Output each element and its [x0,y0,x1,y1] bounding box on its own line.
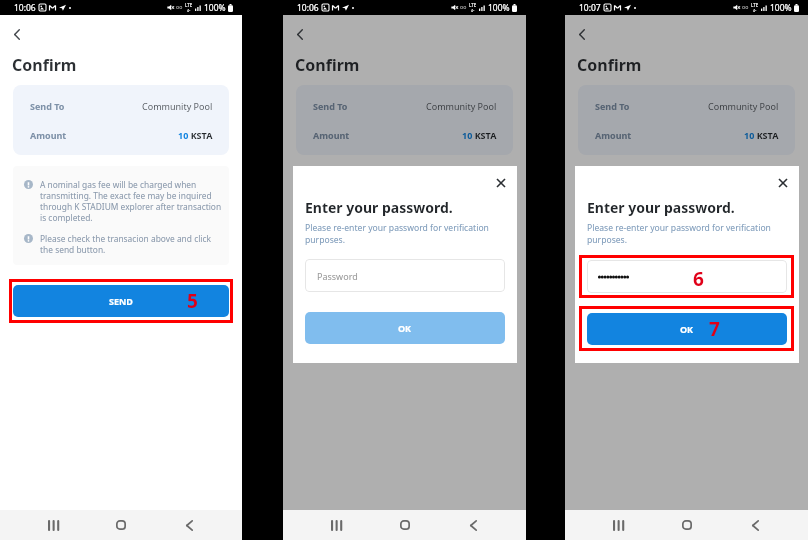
staticText: LTE [751,2,759,8]
staticText: SEND [109,295,133,307]
staticText: Send To [595,100,630,112]
staticText: 10:06 [14,2,36,14]
button[interactable]: OK [305,312,505,344]
staticText: ᴏᴏ [742,4,749,11]
button[interactable]: Home [371,510,439,540]
staticText: A nominal gas fee will be charged when t… [323,179,508,223]
staticText: Amount [313,129,350,141]
staticText: Amount [30,129,67,141]
button[interactable]: Recents [302,510,371,540]
staticText: SEND [675,295,699,307]
button[interactable]: SEND [13,285,229,317]
staticText: 6 [693,266,704,292]
button[interactable]: Back [439,510,507,540]
staticText: 4ᵀ [471,8,475,13]
button[interactable]: Recents [19,510,87,540]
staticText: OK [398,322,412,334]
staticText: 5 [187,288,198,314]
button[interactable]: SEND [296,285,513,317]
staticText: A nominal gas fee will be charged when t… [40,179,224,223]
button[interactable]: Password [305,259,505,292]
button[interactable]: Back [289,23,311,45]
button[interactable]: Recents [584,510,653,540]
button[interactable]: Home [653,510,721,540]
staticText: 100% [488,2,510,14]
staticText: Confirm [12,54,77,76]
staticText: 4ᵀ [753,8,757,13]
staticText: 10:07 [579,2,601,14]
staticText: 10:06 [297,2,319,14]
button[interactable] [587,260,787,293]
staticText: ᴏᴏ [460,4,467,11]
staticText: Enter your password. [587,198,735,217]
staticText: Community Pool [142,100,213,112]
staticText: 10 KSTA [178,129,213,141]
staticText: Please check the transacion above and cl… [323,233,508,255]
button[interactable]: Close [490,172,511,193]
staticText: 10 KSTA [744,129,779,141]
staticText: 10 KSTA [462,129,497,141]
button[interactable]: Close [772,172,793,193]
staticText: Please check the transacion above and cl… [40,233,224,255]
staticText: Password [317,270,358,282]
staticText: Please check the transacion above and cl… [605,233,790,255]
button[interactable]: Back [721,510,789,540]
staticText: Enter your password. [305,198,453,217]
staticText: Amount [595,129,632,141]
staticText: A nominal gas fee will be charged when t… [605,179,790,223]
staticText: 100% [204,2,226,14]
staticText: Community Pool [426,100,497,112]
staticText: Confirm [577,54,642,76]
staticText: OK [680,323,694,335]
staticText: LTE [185,2,193,8]
button[interactable]: Back [6,23,28,45]
staticText: Send To [30,100,65,112]
button[interactable]: Home [87,510,155,540]
staticText: 4ᵀ [187,8,191,13]
staticText: LTE [469,2,477,8]
staticText: Community Pool [708,100,779,112]
staticText: 7 [709,316,720,342]
button[interactable]: Back [155,510,223,540]
button[interactable]: Back [571,23,593,45]
staticText: ᴏᴏ [176,4,183,11]
staticText: Send To [313,100,348,112]
button[interactable]: OK [587,313,787,345]
staticText: Please re-enter your password for verifi… [305,222,495,246]
staticText: 100% [770,2,792,14]
staticText: Confirm [295,54,360,76]
button[interactable]: SEND [578,285,795,317]
staticText: Please re-enter your password for verifi… [587,222,777,246]
